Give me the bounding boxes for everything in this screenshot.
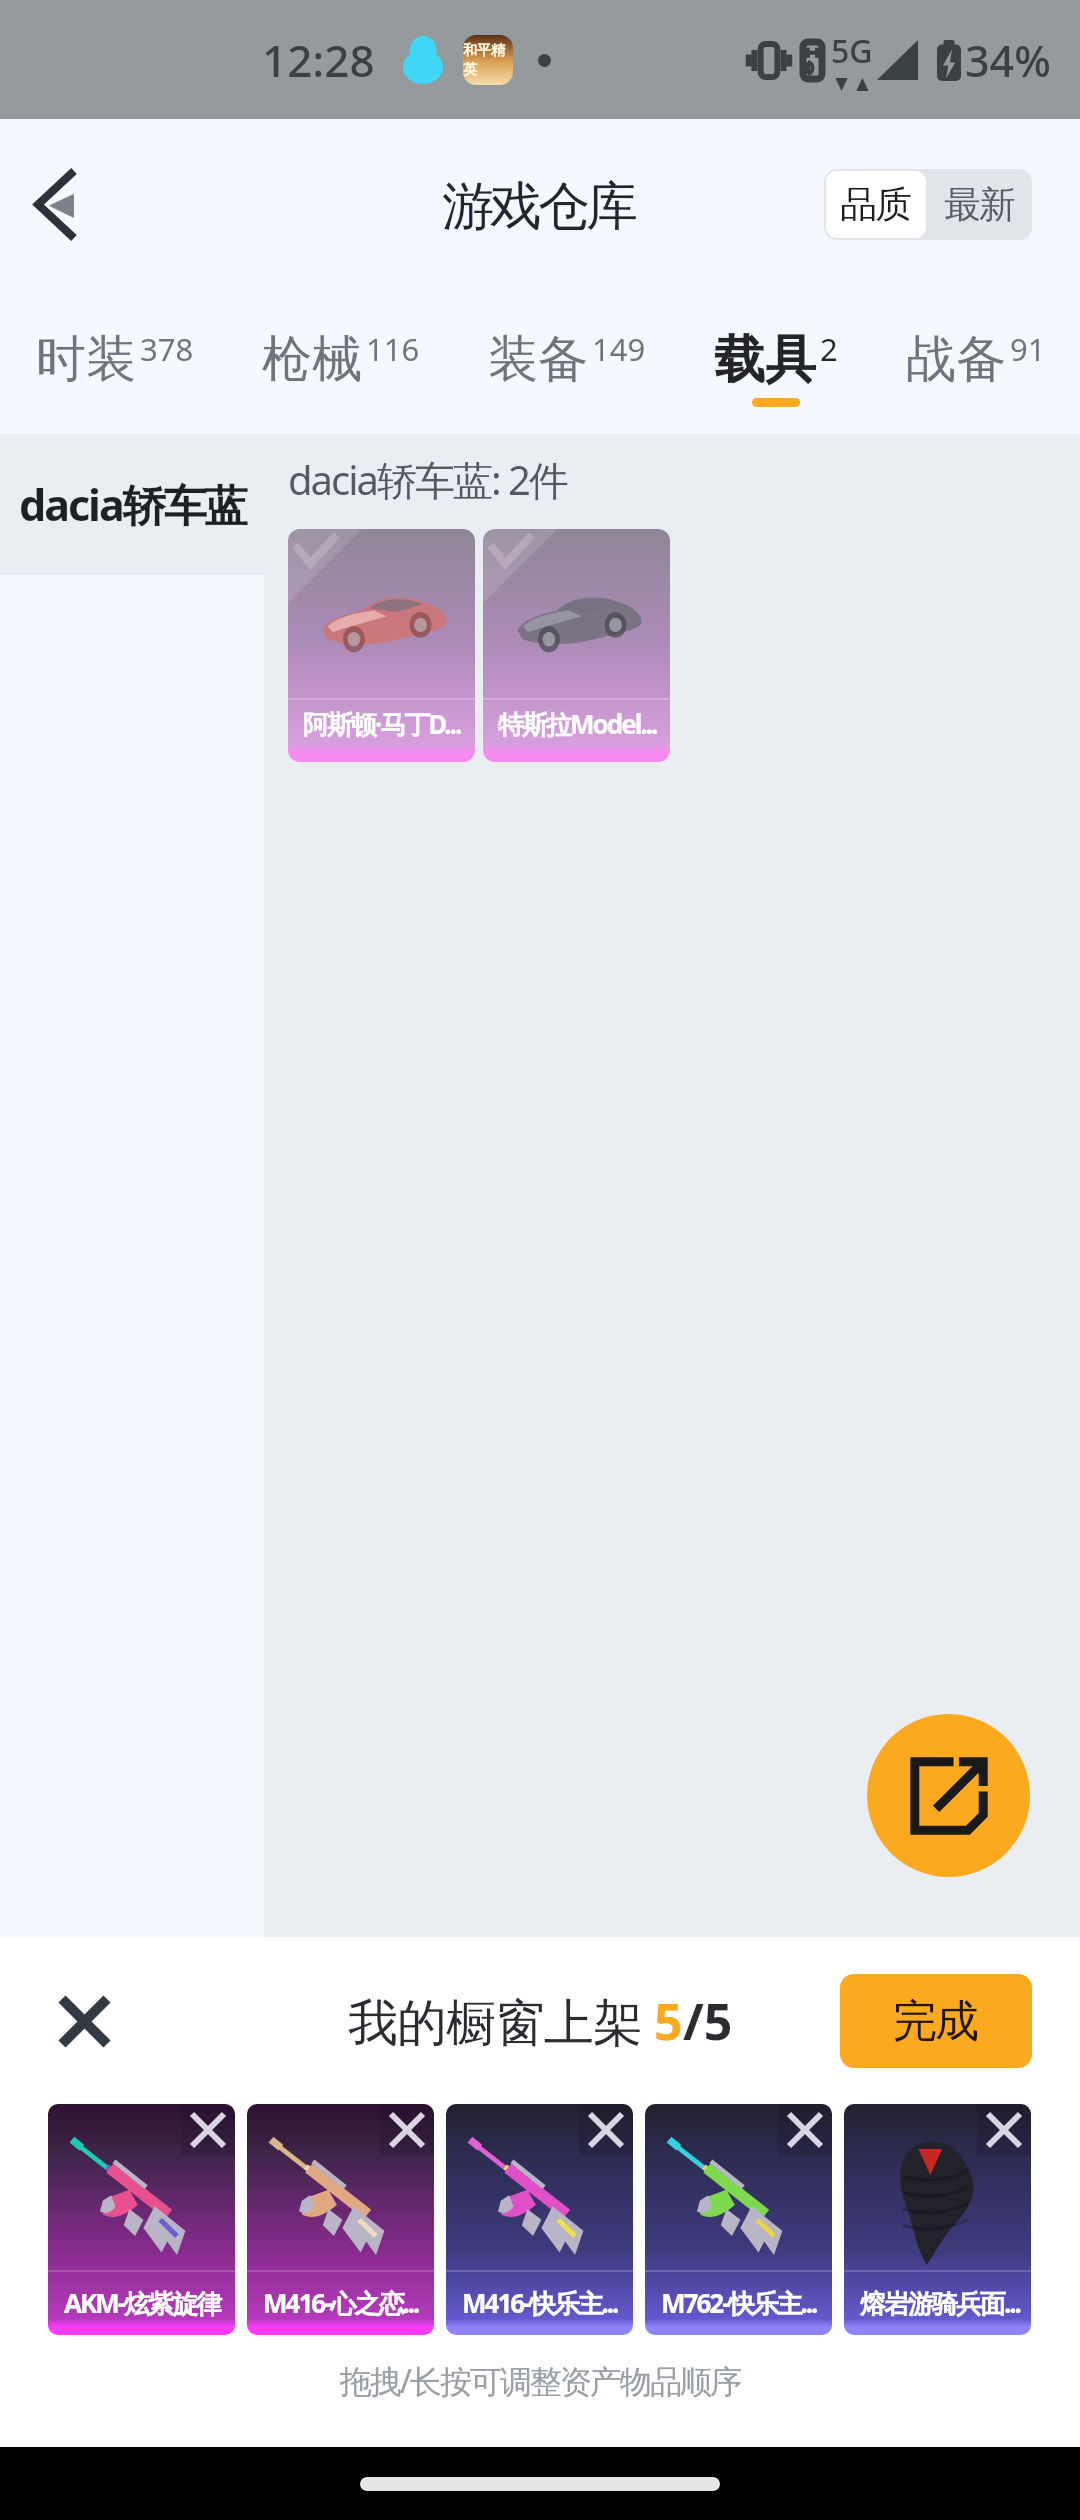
button[interactable]: 特斯拉Model... xyxy=(483,529,670,762)
button[interactable]: 时装 xyxy=(36,289,194,434)
staticText: M416-心之恋... xyxy=(263,2285,432,2321)
button[interactable]: 品质 xyxy=(826,171,926,238)
button[interactable]: 装备 xyxy=(488,289,646,434)
button[interactable]: Remove item xyxy=(380,2104,434,2156)
button[interactable]: 阿斯顿·马丁D... xyxy=(288,529,475,762)
staticText: 阿斯顿·马丁D... xyxy=(303,706,471,742)
button[interactable]: 最新 xyxy=(928,169,1032,240)
staticText: dacia轿车蓝 xyxy=(19,475,246,534)
staticText: 我的橱窗上架 xyxy=(348,1987,654,2055)
button[interactable]: Remove item xyxy=(778,2104,832,2156)
button[interactable]: Remove item xyxy=(645,2104,832,2335)
staticText: 378 xyxy=(140,328,194,370)
button[interactable]: 完成 xyxy=(840,1974,1032,2068)
staticText: 装备 xyxy=(488,328,588,391)
staticText: 完成 xyxy=(894,1994,978,2049)
staticText: /5 xyxy=(683,1987,733,2055)
button[interactable]: Remove item xyxy=(844,2104,1031,2335)
staticText: AKM-炫紫旋律 xyxy=(64,2285,233,2321)
button[interactable]: Open in new window xyxy=(867,1714,1030,1877)
button[interactable]: 枪械 xyxy=(262,289,420,434)
staticText: M416-快乐主... xyxy=(462,2285,631,2321)
staticText: 和平精英 xyxy=(463,42,513,78)
staticText: 特斯拉Model... xyxy=(498,706,666,742)
staticText: 枪械 xyxy=(262,328,362,391)
button[interactable]: 战备 xyxy=(906,289,1046,434)
button[interactable]: Back xyxy=(8,156,104,252)
button[interactable]: Remove item xyxy=(977,2104,1031,2156)
staticText: 5 xyxy=(654,1987,683,2055)
staticText: 品质 xyxy=(841,181,911,228)
button[interactable]: dacia轿车蓝 xyxy=(0,434,264,575)
staticText: 载具 xyxy=(714,328,816,392)
staticText: 12:28 xyxy=(262,30,375,90)
button[interactable]: Remove item xyxy=(48,2104,235,2335)
staticText: 战备 xyxy=(906,328,1006,391)
button[interactable]: Close xyxy=(36,1973,132,2069)
staticText: 116 xyxy=(366,328,420,370)
staticText: dacia轿车蓝: 2件 xyxy=(288,452,567,507)
staticText: M762-快乐主... xyxy=(661,2285,830,2321)
staticText: 游戏仓库 xyxy=(444,174,636,240)
staticText: 最新 xyxy=(945,181,1015,228)
button[interactable]: Remove item xyxy=(579,2104,633,2156)
staticText: 熔岩游骑兵面... xyxy=(860,2285,1029,2321)
staticText: 5G xyxy=(831,29,873,73)
button[interactable]: Remove item xyxy=(446,2104,633,2335)
button[interactable]: Remove item xyxy=(181,2104,235,2156)
staticText: 拖拽/长按可调整资产物品顺序 xyxy=(0,2359,1080,2403)
staticText: 时装 xyxy=(36,328,136,391)
button[interactable]: Remove item xyxy=(247,2104,434,2335)
staticText: 34% xyxy=(965,31,1051,90)
button[interactable]: 载具 xyxy=(714,289,838,434)
staticText: 149 xyxy=(592,328,646,370)
staticText: 2 xyxy=(820,328,838,370)
staticText: 91 xyxy=(1010,328,1046,370)
